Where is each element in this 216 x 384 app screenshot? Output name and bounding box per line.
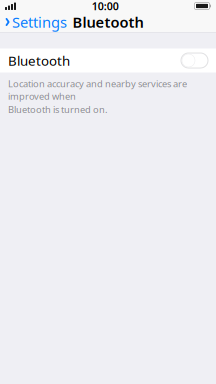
button[interactable]: Settings bbox=[0, 12, 72, 32]
staticText: 10:00 bbox=[92, 0, 119, 13]
staticText: Bluetooth bbox=[8, 52, 70, 69]
staticText: Location accuracy and nearby services ar… bbox=[8, 77, 187, 102]
staticText: Bluetooth bbox=[72, 12, 143, 32]
staticText: Bluetooth is turned on. bbox=[8, 103, 108, 116]
staticText: Settings bbox=[12, 12, 67, 32]
button[interactable]: Bluetooth, off bbox=[181, 53, 208, 68]
button[interactable]: Bluetooth bbox=[0, 48, 216, 72]
